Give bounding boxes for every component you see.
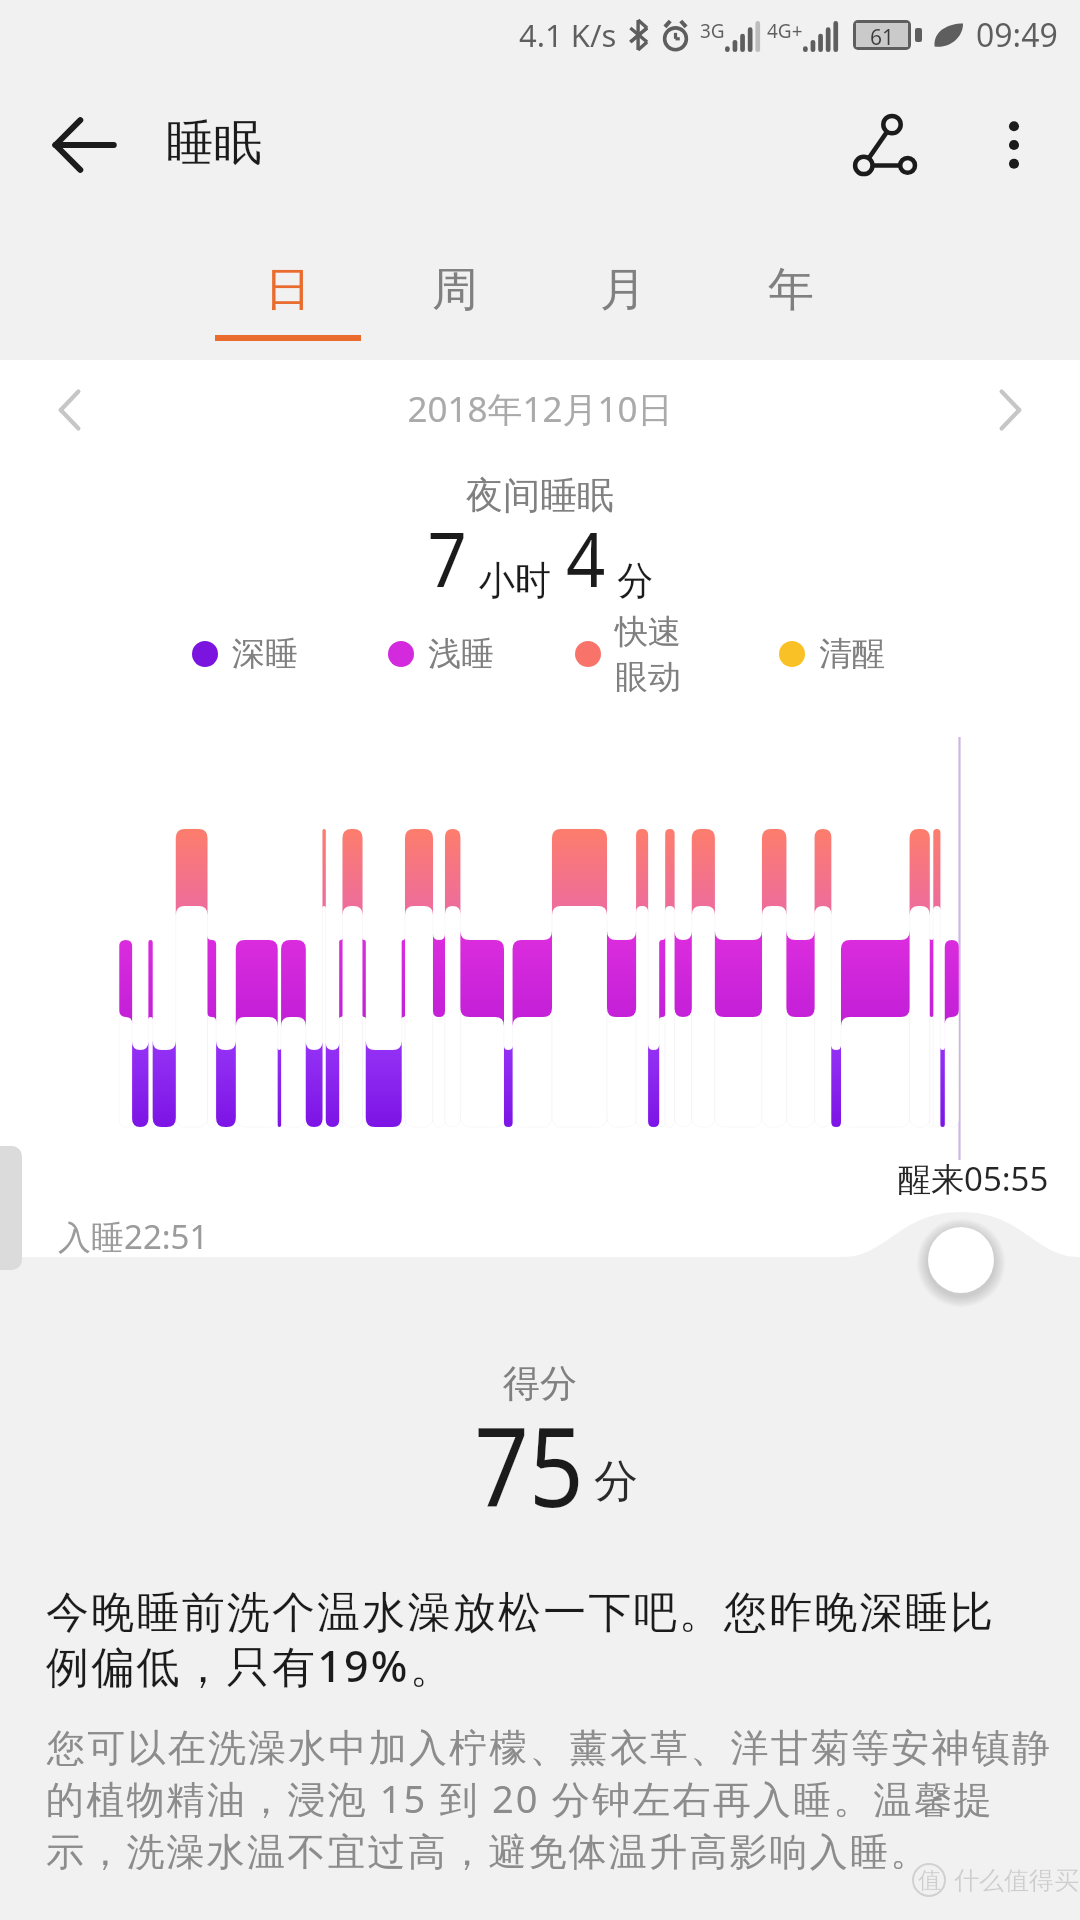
staticText: 您可以在洗澡水中加入柠檬、薰衣草、洋甘菊等安神镇静	[46, 1724, 1051, 1772]
staticText: 例偏低，只有19%。	[46, 1636, 455, 1695]
button[interactable]: More options	[968, 99, 1060, 191]
staticText: 4G+	[767, 18, 803, 44]
staticText: 09:49	[976, 13, 1058, 57]
staticText: 深睡	[232, 633, 298, 675]
staticText: 4	[566, 508, 606, 609]
staticText: 分	[617, 556, 653, 605]
staticText: 75	[59, 1389, 999, 1539]
staticText: 4.1 K/s	[519, 14, 617, 56]
staticText: 夜间睡眠	[0, 472, 1080, 519]
staticText: 7	[427, 508, 467, 609]
staticText: 什么值得买	[954, 1865, 1079, 1896]
button[interactable]: 快速 眼动	[575, 610, 681, 698]
button[interactable]: Next day	[972, 372, 1048, 448]
staticText: 周	[432, 261, 478, 319]
staticText: 2018年12月10日	[0, 385, 1080, 433]
button[interactable]: 周	[371, 241, 539, 365]
staticText: 年	[768, 261, 814, 319]
staticText: 61	[870, 23, 895, 47]
staticText: 分	[594, 1454, 638, 1509]
staticText: 3G	[700, 18, 725, 44]
button[interactable]: 年	[707, 241, 875, 365]
button[interactable]: 清醒	[779, 610, 885, 698]
staticText: 的植物精油，浸泡 15 到 20 分钟左右再入睡。温馨提	[46, 1772, 995, 1824]
staticText: 醒来05:55	[898, 1156, 1049, 1201]
staticText: 得分	[0, 1360, 1080, 1407]
staticText: 入睡22:51	[58, 1214, 209, 1259]
button[interactable]: Share	[840, 99, 932, 191]
button[interactable]: 月	[539, 241, 707, 365]
staticText: 清醒	[819, 633, 885, 675]
button[interactable]: 深睡	[192, 610, 298, 698]
button[interactable]: 日	[204, 241, 372, 365]
staticText: 睡眠	[166, 113, 262, 173]
staticText: 示，洗澡水温不宜过高，避免体温升高影响入睡。	[46, 1828, 931, 1876]
button[interactable]: Previous day	[32, 372, 108, 448]
staticText: 快速 眼动	[615, 611, 681, 698]
staticText: 值	[918, 1866, 941, 1895]
button[interactable]: 浅睡	[388, 610, 494, 698]
staticText: 小时	[479, 556, 551, 605]
staticText: 浅睡	[428, 633, 494, 675]
staticText: 月	[600, 261, 646, 319]
staticText: 日	[265, 261, 311, 319]
button[interactable]: Back	[38, 99, 130, 191]
staticText: 今晚睡前洗个温水澡放松一下吧。您昨晚深睡比	[46, 1586, 996, 1640]
